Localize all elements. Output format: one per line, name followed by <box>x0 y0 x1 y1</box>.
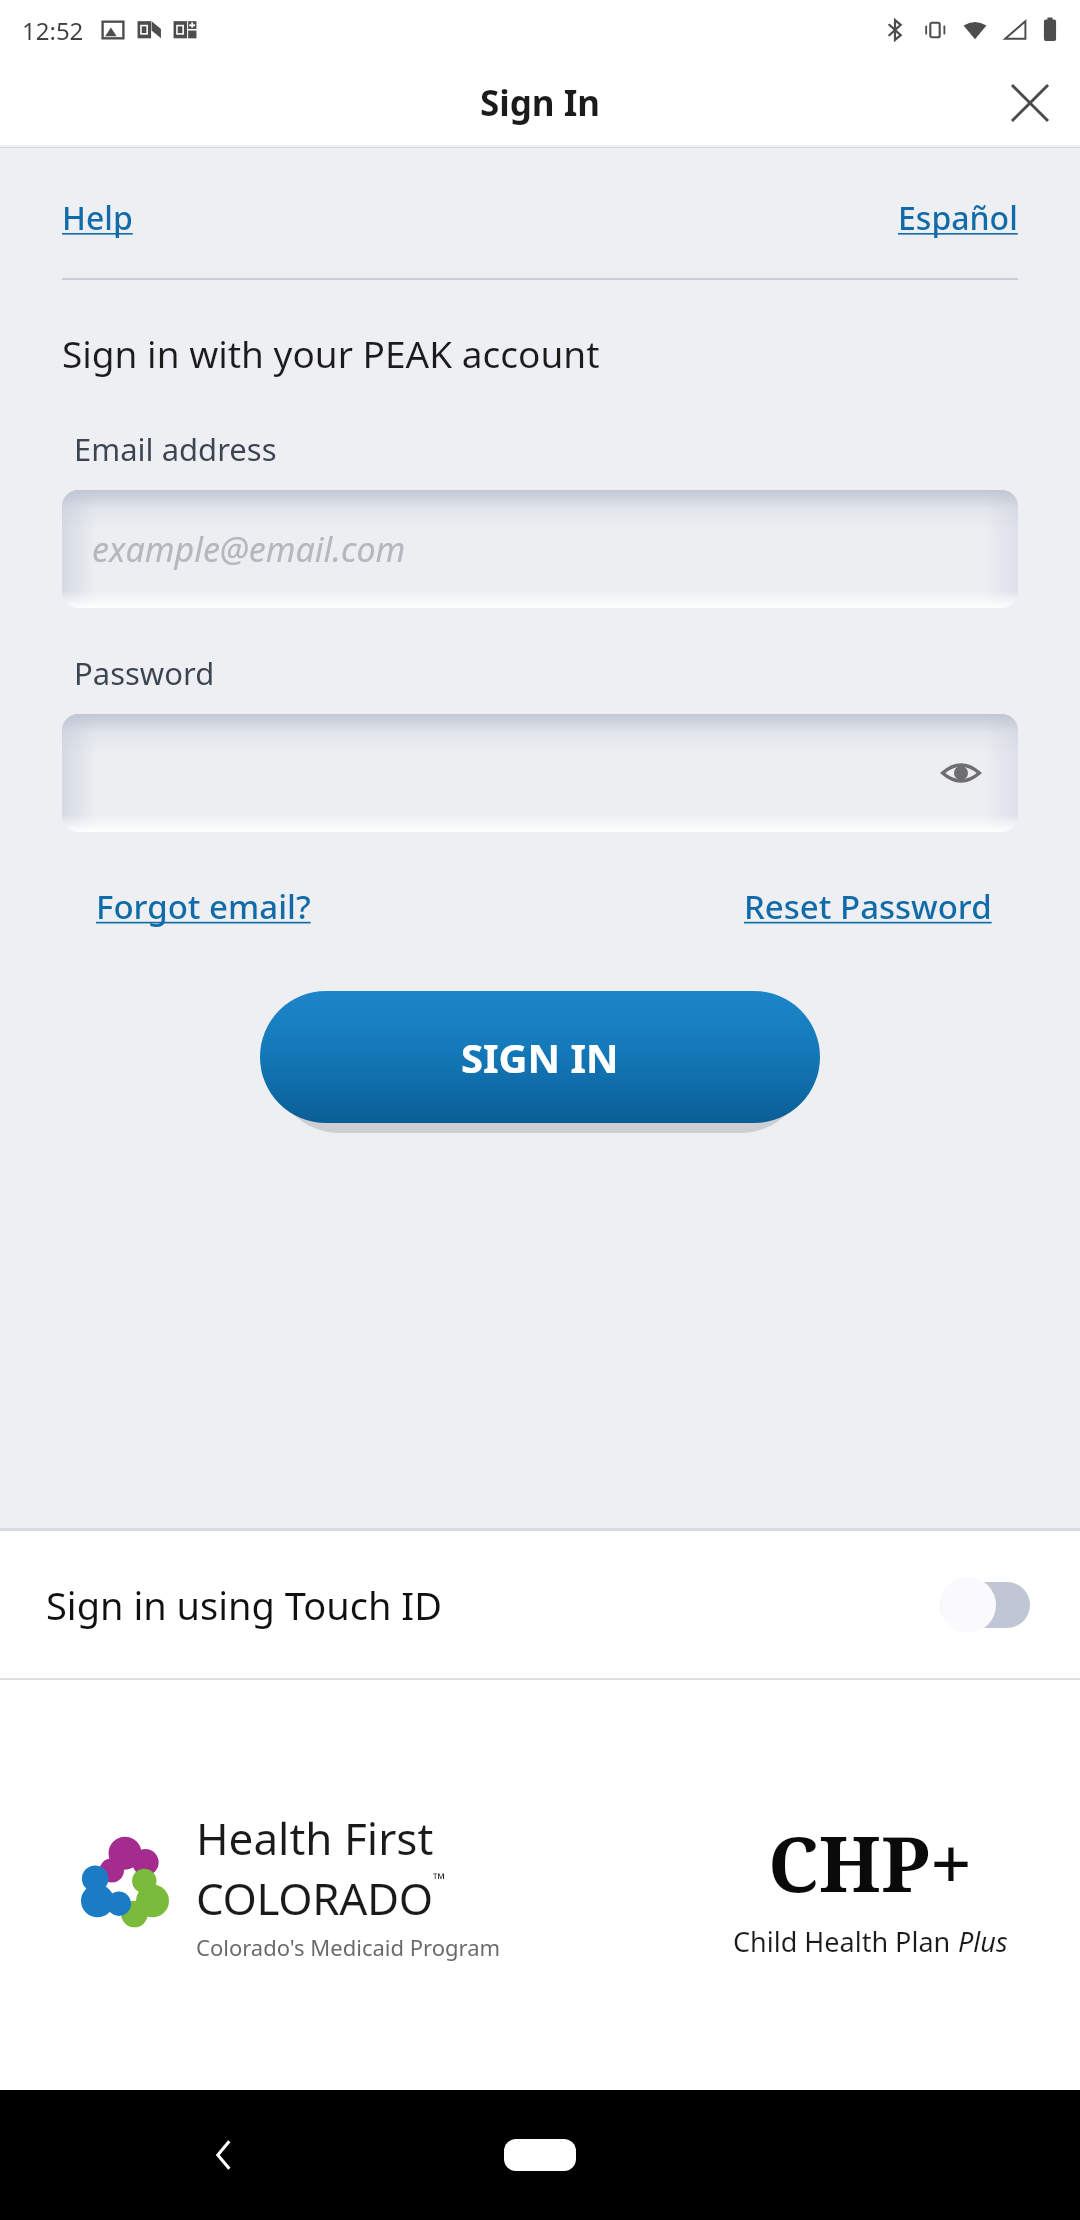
staticText: Plus <box>958 1923 1008 1960</box>
staticText: Sign In <box>480 79 601 127</box>
button[interactable]: Español <box>898 196 1018 240</box>
button[interactable]: Reset Password <box>744 884 992 929</box>
button[interactable]: Sign in using Touch ID <box>0 1531 1080 1678</box>
staticText: Child Health Plan <box>733 1923 958 1960</box>
button[interactable]: Show password <box>62 714 1018 832</box>
staticText: CHP+ <box>768 1811 973 1915</box>
staticText: Email address <box>74 428 277 470</box>
button[interactable]: Forgot email? <box>96 884 311 929</box>
button[interactable]: Back <box>190 2120 260 2190</box>
staticText: Sign in using Touch ID <box>46 1579 442 1631</box>
button[interactable]: Show password <box>926 738 996 808</box>
staticText: Health First <box>196 1808 434 1868</box>
staticText: ™ <box>433 1868 446 1890</box>
staticText: Sign in with your PEAK account <box>62 328 600 378</box>
button[interactable]: SIGN IN <box>260 991 820 1123</box>
staticText: Colorado's Medicaid Program <box>196 1932 501 1962</box>
staticText: 12:52 <box>22 14 84 47</box>
button[interactable]: Help <box>62 196 133 240</box>
staticText: Password <box>74 652 215 694</box>
staticText: COLORADO <box>196 1868 433 1928</box>
staticText: example@email.com <box>92 526 406 572</box>
button[interactable]: Close <box>998 71 1062 135</box>
staticText: SIGN IN <box>461 1030 619 1084</box>
button[interactable]: Home <box>504 2139 576 2171</box>
button[interactable]: example@email.com <box>62 490 1018 608</box>
